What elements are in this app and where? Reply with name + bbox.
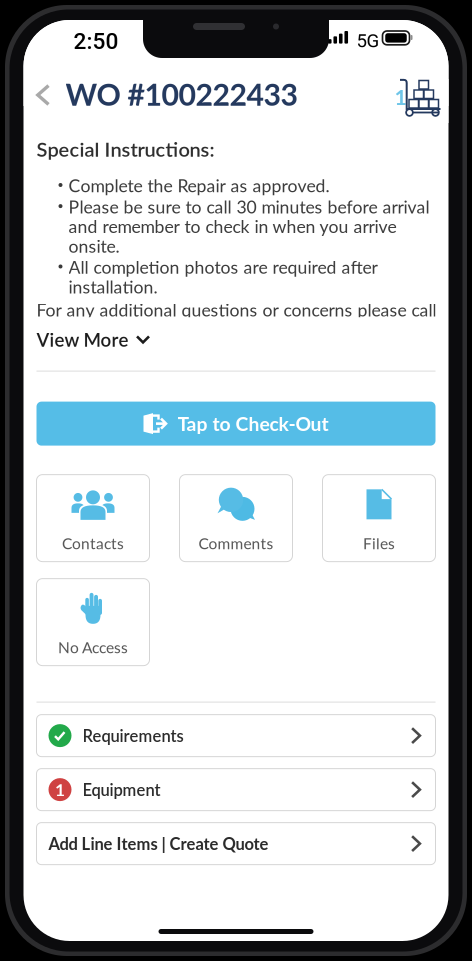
button[interactable]: Tap to Check-Out [36, 402, 435, 446]
button[interactable]: Back [27, 76, 59, 114]
staticText: No Access [58, 638, 128, 657]
button[interactable]: 1 [36, 769, 435, 811]
staticText: Requirements [82, 726, 183, 745]
staticText: View More [36, 328, 128, 351]
staticText: Contacts [62, 534, 124, 553]
staticText: Complete the Repair as approved. [68, 175, 329, 196]
button[interactable]: Add Line Items | Create Quote [36, 823, 435, 865]
staticText: WO #100222433 [65, 76, 297, 112]
button[interactable]: No Access [36, 579, 149, 666]
staticText: 1 [55, 779, 65, 800]
staticText: Please be sure to call 30 minutes before… [68, 196, 429, 256]
staticText: 5G [356, 30, 379, 52]
button[interactable]: View More [36, 317, 150, 353]
staticText: Files [363, 534, 395, 553]
button[interactable]: Requirements [36, 715, 435, 757]
staticText: 1 [394, 84, 406, 110]
staticText: For any additional questions or concerns… [36, 299, 436, 320]
button[interactable]: Comments [179, 475, 292, 562]
staticText: 2:50 [73, 28, 118, 55]
staticText: Tap to Check-Out [177, 412, 328, 435]
button[interactable]: Files [322, 475, 435, 562]
staticText: Equipment [82, 780, 160, 799]
button[interactable]: Materials [402, 79, 452, 123]
staticText: Add Line Items | Create Quote [48, 834, 268, 853]
staticText: Special Instructions: [36, 137, 214, 161]
button[interactable]: Contacts [36, 475, 149, 562]
staticText: Comments [198, 534, 273, 553]
staticText: All completion photos are required after… [68, 256, 377, 297]
